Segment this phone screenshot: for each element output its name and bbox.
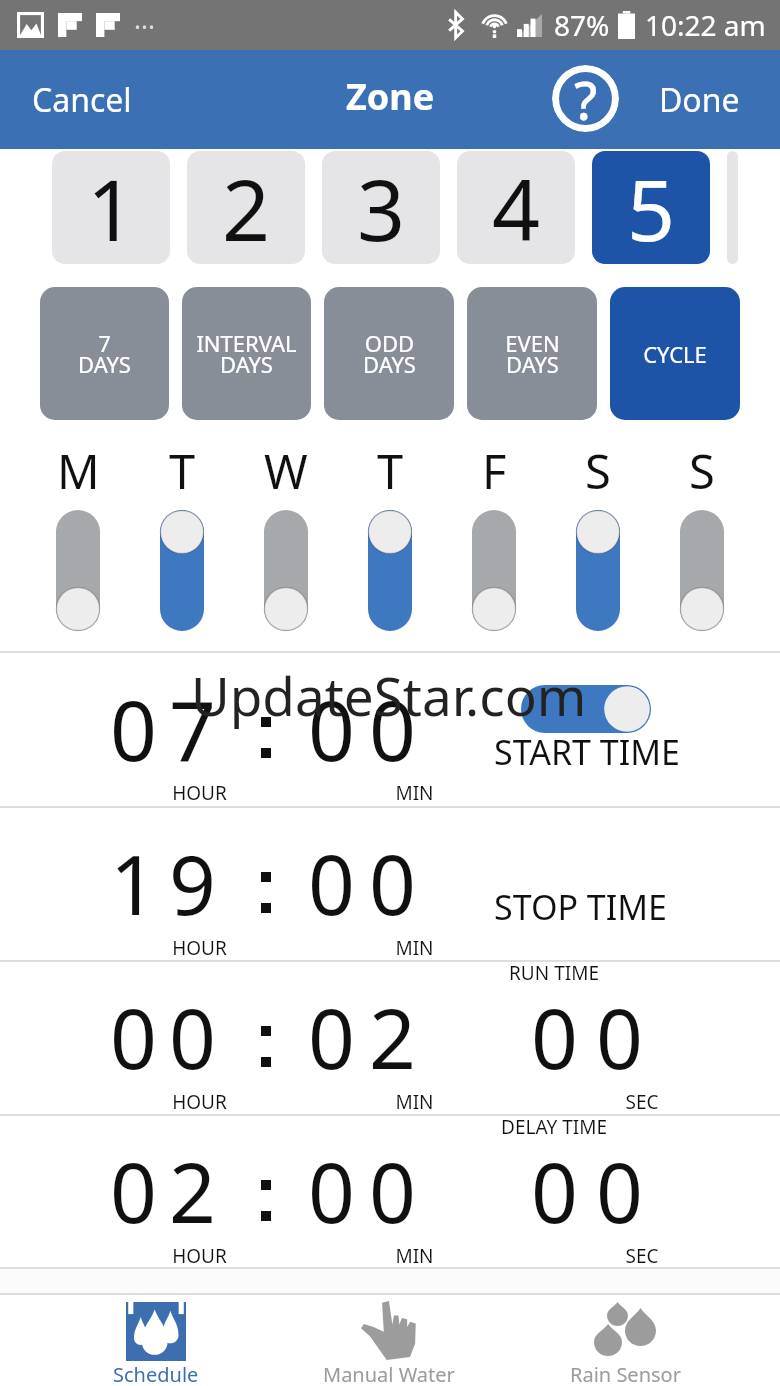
staticText: 0 xyxy=(369,827,416,939)
staticText: 0 xyxy=(308,981,355,1093)
staticText: INTERVAL DAYS xyxy=(196,328,297,380)
button[interactable]: T day toggle xyxy=(130,505,234,636)
staticText: 0 xyxy=(110,673,157,785)
staticText: Manual Water xyxy=(323,1361,455,1386)
button[interactable]: M day toggle xyxy=(26,505,130,636)
staticText: HOUR xyxy=(172,780,227,806)
staticText: HOUR xyxy=(172,935,227,961)
staticText: DELAY TIME xyxy=(501,1114,607,1140)
staticText: 0 xyxy=(596,981,643,1093)
button[interactable]: 1 xyxy=(52,151,170,264)
button[interactable] xyxy=(727,151,738,264)
staticText: T xyxy=(377,439,404,503)
staticText: 9 xyxy=(169,827,216,939)
staticText: 0 xyxy=(169,981,216,1093)
button[interactable]: 2 xyxy=(187,151,305,264)
staticText: Cancel xyxy=(32,78,132,122)
staticText: 2 xyxy=(369,981,416,1093)
button[interactable]: F day toggle xyxy=(442,505,546,636)
staticText: 0 xyxy=(369,673,416,785)
button[interactable]: 3 xyxy=(322,151,440,264)
button[interactable]: Rain Sensor xyxy=(515,1295,735,1386)
staticText: START TIME xyxy=(494,729,680,775)
staticText: MIN xyxy=(395,1089,434,1115)
staticText: 4 xyxy=(492,151,541,264)
staticText: Rain Sensor xyxy=(570,1361,681,1386)
staticText: 0 xyxy=(110,981,157,1093)
staticText: 0 xyxy=(531,981,578,1093)
button[interactable]: 7 DAYS xyxy=(40,287,169,420)
staticText: CYCLE xyxy=(643,339,707,369)
staticText: HOUR xyxy=(172,1243,227,1269)
staticText: S xyxy=(689,439,715,503)
staticText: 0 xyxy=(308,673,355,785)
staticText: 3 xyxy=(357,151,406,264)
button[interactable]: T day toggle xyxy=(338,505,442,636)
staticText: 0 xyxy=(308,1135,355,1247)
button[interactable]: S day toggle xyxy=(546,505,650,636)
button[interactable]: Cancel xyxy=(0,50,164,149)
button[interactable]: W day toggle xyxy=(234,505,338,636)
button[interactable]: Help xyxy=(552,65,619,132)
staticText: UpdateStar.com xyxy=(191,659,587,731)
button[interactable]: 4 xyxy=(457,151,575,264)
staticText: SEC xyxy=(625,1089,659,1115)
staticText: 0 xyxy=(596,1135,643,1247)
staticText: ? xyxy=(574,65,598,131)
staticText: SEC xyxy=(625,1243,659,1269)
staticText: 0 xyxy=(110,1135,157,1247)
staticText: 2 xyxy=(169,1135,216,1247)
staticText: HOUR xyxy=(172,1089,227,1115)
staticText: MIN xyxy=(395,935,434,961)
staticText: 1 xyxy=(87,151,136,264)
staticText: MIN xyxy=(395,1243,434,1269)
staticText: 1 xyxy=(110,827,157,939)
staticText: 0 xyxy=(369,1135,416,1247)
staticText: Schedule xyxy=(113,1361,199,1386)
staticText: 0 xyxy=(531,1135,578,1247)
staticText: ODD DAYS xyxy=(363,328,416,380)
button[interactable]: Enable start time xyxy=(521,685,651,733)
staticText: M xyxy=(57,439,100,503)
button[interactable]: Schedule xyxy=(46,1295,266,1386)
staticText: EVEN DAYS xyxy=(505,328,560,380)
button[interactable]: Manual Water xyxy=(279,1295,499,1386)
staticText: S xyxy=(585,439,611,503)
button[interactable]: CYCLE xyxy=(610,287,740,420)
staticText: 10:22 am xyxy=(645,6,766,44)
staticText: Done xyxy=(659,78,740,122)
staticText: RUN TIME xyxy=(509,960,599,986)
button[interactable]: EVEN DAYS xyxy=(467,287,597,420)
staticText: 2 xyxy=(222,151,271,264)
button[interactable]: Done xyxy=(637,50,780,149)
staticText: MIN xyxy=(395,780,434,806)
button[interactable]: INTERVAL DAYS xyxy=(182,287,311,420)
button[interactable]: 5 xyxy=(592,151,710,264)
staticText: T xyxy=(169,439,196,503)
button[interactable]: S day toggle xyxy=(650,505,754,636)
staticText: W xyxy=(264,439,308,503)
staticText: F xyxy=(482,439,507,503)
staticText: ... xyxy=(134,1,155,36)
staticText: 7 DAYS xyxy=(78,328,131,380)
staticText: 5 xyxy=(627,151,676,264)
staticText: 7 xyxy=(169,673,216,785)
staticText: 0 xyxy=(308,827,355,939)
staticText: STOP TIME xyxy=(494,884,668,930)
button[interactable]: ODD DAYS xyxy=(324,287,454,420)
staticText: 87% xyxy=(554,6,610,44)
staticText: Zone xyxy=(346,72,435,121)
